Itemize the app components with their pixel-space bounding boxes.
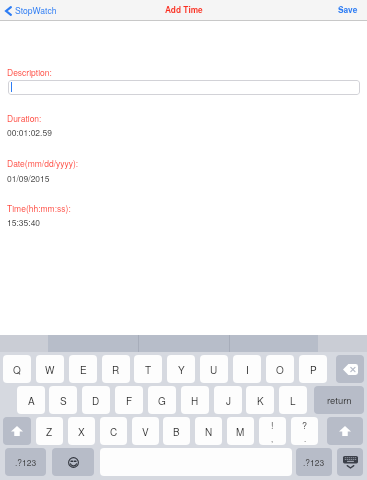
button[interactable]: A bbox=[17, 386, 45, 414]
staticText: X bbox=[78, 425, 85, 439]
staticText: 15:35:40 bbox=[7, 216, 41, 228]
staticText: . bbox=[304, 433, 307, 444]
staticText: Add Time bbox=[165, 4, 203, 16]
staticText: U bbox=[210, 363, 218, 377]
staticText: W bbox=[45, 363, 55, 377]
staticText: Z bbox=[46, 425, 53, 439]
button[interactable]: Backspace bbox=[336, 355, 364, 383]
staticText: T bbox=[145, 363, 152, 377]
button[interactable]: U bbox=[200, 355, 228, 383]
button[interactable]: Y bbox=[167, 355, 195, 383]
staticText: Q bbox=[13, 363, 21, 377]
button[interactable]: C bbox=[100, 417, 127, 445]
button[interactable]: X bbox=[68, 417, 95, 445]
staticText: F bbox=[126, 394, 133, 408]
staticText: StopWatch bbox=[15, 4, 57, 16]
button[interactable]: S bbox=[49, 386, 77, 414]
staticText: C bbox=[110, 425, 118, 439]
button[interactable]: W bbox=[36, 355, 64, 383]
button[interactable]: O bbox=[266, 355, 294, 383]
staticText: Description: bbox=[7, 66, 52, 78]
staticText: L bbox=[290, 394, 296, 408]
button[interactable]: Shift bbox=[3, 417, 31, 445]
staticText: S bbox=[60, 394, 67, 408]
button[interactable]: StopWatch bbox=[5, 0, 57, 21]
button[interactable]: ! bbox=[259, 417, 286, 445]
button[interactable]: .?123 bbox=[296, 448, 332, 476]
button[interactable]: return bbox=[314, 386, 364, 414]
button[interactable]: K bbox=[246, 386, 274, 414]
staticText: N bbox=[205, 425, 213, 439]
button[interactable]: V bbox=[132, 417, 159, 445]
staticText: Y bbox=[178, 363, 185, 377]
button[interactable]: Emoji bbox=[52, 448, 94, 476]
staticText: .?123 bbox=[15, 456, 37, 468]
button[interactable] bbox=[8, 80, 360, 95]
button[interactable]: D bbox=[82, 386, 110, 414]
button[interactable]: ? bbox=[291, 417, 318, 445]
staticText: K bbox=[257, 394, 264, 408]
staticText: B bbox=[173, 425, 180, 439]
button[interactable]: Hide keyboard bbox=[337, 448, 363, 476]
button[interactable]: E bbox=[69, 355, 97, 383]
staticText: M bbox=[236, 425, 245, 439]
button[interactable]: M bbox=[227, 417, 254, 445]
staticText: ! bbox=[271, 419, 274, 432]
staticText: I bbox=[246, 363, 249, 377]
staticText: R bbox=[112, 363, 120, 377]
staticText: J bbox=[226, 394, 231, 408]
button[interactable]: H bbox=[181, 386, 209, 414]
staticText: Time(hh:mm:ss): bbox=[7, 202, 71, 214]
staticText: , bbox=[271, 433, 274, 444]
staticText: .?123 bbox=[303, 456, 325, 468]
staticText: P bbox=[310, 363, 317, 377]
staticText: A bbox=[28, 394, 35, 408]
button[interactable]: I bbox=[233, 355, 261, 383]
staticText: O bbox=[276, 363, 284, 377]
staticText: Save bbox=[338, 4, 358, 16]
button[interactable]: P bbox=[299, 355, 327, 383]
staticText: 01/09/2015 bbox=[7, 172, 50, 184]
button[interactable]: R bbox=[102, 355, 130, 383]
staticText: E bbox=[80, 363, 87, 377]
staticText: H bbox=[191, 394, 199, 408]
button[interactable]: G bbox=[148, 386, 176, 414]
button[interactable]: L bbox=[279, 386, 307, 414]
staticText: Date(mm/dd/yyyy): bbox=[7, 157, 79, 169]
button[interactable]: N bbox=[195, 417, 222, 445]
button[interactable]: B bbox=[163, 417, 190, 445]
button[interactable]: J bbox=[214, 386, 242, 414]
button[interactable]: Save bbox=[338, 4, 358, 16]
staticText: 00:01:02.59 bbox=[7, 126, 52, 138]
button[interactable]: .?123 bbox=[5, 448, 46, 476]
staticText: ? bbox=[302, 419, 308, 432]
button[interactable]: Q bbox=[3, 355, 31, 383]
button[interactable]: T bbox=[134, 355, 162, 383]
staticText: G bbox=[158, 394, 166, 408]
button[interactable]: F bbox=[115, 386, 143, 414]
button[interactable]: Z bbox=[36, 417, 63, 445]
button[interactable]: Shift bbox=[327, 417, 363, 445]
staticText: return bbox=[327, 393, 352, 407]
staticText: V bbox=[142, 425, 149, 439]
staticText: D bbox=[92, 394, 100, 408]
staticText: Duration: bbox=[7, 112, 42, 124]
